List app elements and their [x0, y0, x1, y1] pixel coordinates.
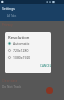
staticText: Resolution	[8, 35, 30, 41]
staticText: Settings	[2, 6, 15, 11]
button[interactable]: 1080x1920	[5, 54, 51, 61]
button[interactable]: Automatic	[5, 40, 51, 47]
staticText: Privacy	[2, 23, 13, 27]
staticText: Clear data	[2, 79, 18, 83]
staticText: Automatic	[13, 41, 30, 46]
staticText: Do Not Track	[2, 85, 22, 89]
staticText: CANCEL	[40, 64, 51, 68]
button[interactable]: CANCEL	[39, 62, 51, 69]
staticText: 720x1280	[13, 48, 29, 53]
button[interactable]: 720x1280	[5, 47, 51, 54]
staticText: 1080x1920	[13, 55, 31, 60]
button[interactable]: New tab	[46, 87, 53, 94]
staticText: All Tabs	[7, 14, 17, 18]
